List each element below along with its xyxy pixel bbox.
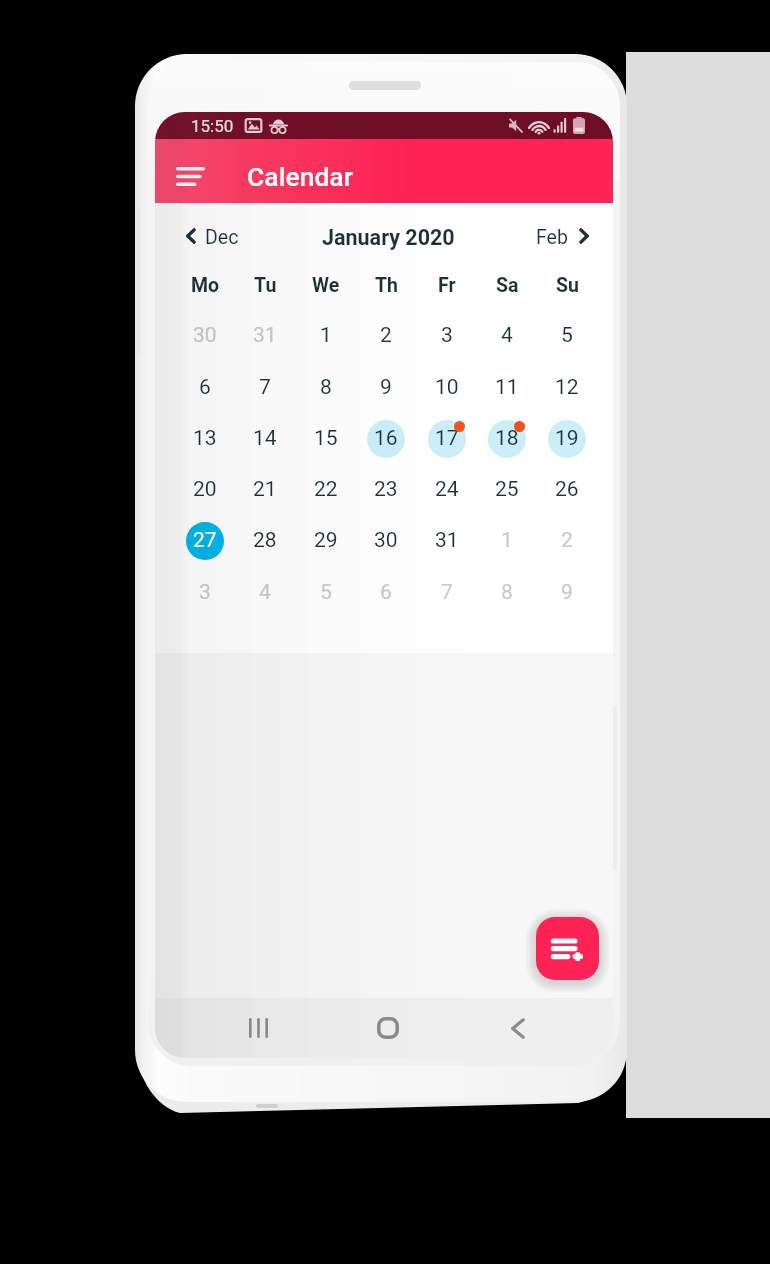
button[interactable]: 28: [235, 515, 295, 566]
button[interactable]: 15: [296, 413, 356, 464]
staticText: 8: [501, 580, 513, 605]
button[interactable]: 16: [356, 413, 416, 464]
staticText: 18: [495, 426, 519, 451]
button[interactable]: Dec: [186, 213, 239, 259]
button[interactable]: Recents: [228, 998, 288, 1058]
staticText: 6: [199, 375, 211, 400]
button[interactable]: Home: [358, 998, 418, 1058]
staticText: 15:50: [191, 116, 234, 136]
staticText: Th: [375, 274, 398, 297]
button[interactable]: 6: [175, 362, 235, 413]
button[interactable]: 26: [537, 464, 597, 515]
staticText: 30: [374, 528, 398, 553]
staticText: 30: [193, 323, 217, 348]
staticText: We: [312, 274, 340, 297]
staticText: 27: [193, 528, 217, 553]
button[interactable]: Feb: [536, 213, 589, 259]
button[interactable]: 4: [235, 567, 295, 618]
button[interactable]: 8: [477, 567, 537, 618]
staticText: 3: [199, 580, 211, 605]
staticText: 7: [259, 375, 271, 400]
staticText: Feb: [536, 226, 568, 249]
button[interactable]: 17: [417, 413, 477, 464]
staticText: January 2020: [322, 225, 455, 250]
button[interactable]: 2: [356, 310, 416, 361]
staticText: Fr: [438, 274, 456, 297]
button[interactable]: 20: [175, 464, 235, 515]
staticText: 2: [561, 528, 573, 553]
staticText: 19: [555, 426, 579, 451]
staticText: 21: [253, 477, 277, 502]
staticText: 20: [193, 477, 217, 502]
staticText: 29: [314, 528, 338, 553]
staticText: 9: [561, 580, 573, 605]
button[interactable]: 14: [235, 413, 295, 464]
button[interactable]: 1: [477, 515, 537, 566]
staticText: Su: [556, 274, 579, 297]
button[interactable]: 21: [235, 464, 295, 515]
button[interactable]: 2: [537, 515, 597, 566]
staticText: 25: [495, 477, 519, 502]
button[interactable]: 31: [417, 515, 477, 566]
staticText: 1: [320, 323, 332, 348]
staticText: 28: [253, 528, 277, 553]
button[interactable]: 23: [356, 464, 416, 515]
staticText: 10: [435, 375, 459, 400]
button[interactable]: 3: [417, 310, 477, 361]
staticText: 26: [555, 477, 579, 502]
staticText: Dec: [205, 226, 239, 249]
staticText: Mo: [191, 274, 220, 297]
button[interactable]: 8: [296, 362, 356, 413]
staticText: 6: [380, 580, 392, 605]
staticText: Sa: [496, 274, 519, 297]
button[interactable]: 29: [296, 515, 356, 566]
staticText: 2: [380, 323, 392, 348]
staticText: 5: [320, 580, 332, 605]
button[interactable]: 31: [235, 310, 295, 361]
button[interactable]: 27: [175, 515, 235, 566]
button[interactable]: 9: [356, 362, 416, 413]
staticText: 11: [495, 375, 519, 400]
staticText: Calendar: [247, 161, 354, 192]
button[interactable]: Back: [488, 998, 548, 1058]
staticText: Tu: [254, 274, 277, 297]
button[interactable]: 12: [537, 362, 597, 413]
staticText: 17: [435, 426, 459, 451]
staticText: 22: [314, 477, 338, 502]
button[interactable]: 6: [356, 567, 416, 618]
button[interactable]: 22: [296, 464, 356, 515]
button[interactable]: 24: [417, 464, 477, 515]
button[interactable]: 25: [477, 464, 537, 515]
button[interactable]: 13: [175, 413, 235, 464]
staticText: 4: [501, 323, 513, 348]
button[interactable]: 19: [537, 413, 597, 464]
button[interactable]: 1: [296, 310, 356, 361]
staticText: 14: [253, 426, 277, 451]
button[interactable]: 30: [356, 515, 416, 566]
button[interactable]: 9: [537, 567, 597, 618]
staticText: 31: [253, 323, 277, 348]
button[interactable]: 10: [417, 362, 477, 413]
button[interactable]: 5: [296, 567, 356, 618]
staticText: 15: [314, 426, 338, 451]
staticText: 3: [441, 323, 453, 348]
staticText: 12: [555, 375, 579, 400]
staticText: 31: [435, 528, 459, 553]
button[interactable]: 11: [477, 362, 537, 413]
button[interactable]: New event: [536, 917, 599, 980]
button[interactable]: Menu: [163, 149, 217, 203]
button[interactable]: 5: [537, 310, 597, 361]
button[interactable]: 7: [417, 567, 477, 618]
staticText: 4: [259, 580, 271, 605]
button[interactable]: 7: [235, 362, 295, 413]
staticText: 8: [320, 375, 332, 400]
button[interactable]: 3: [175, 567, 235, 618]
staticText: 9: [380, 375, 392, 400]
staticText: 23: [374, 477, 398, 502]
staticText: 7: [441, 580, 453, 605]
staticText: 16: [374, 426, 398, 451]
button[interactable]: 30: [175, 310, 235, 361]
button[interactable]: 18: [477, 413, 537, 464]
staticText: 24: [435, 477, 459, 502]
button[interactable]: 4: [477, 310, 537, 361]
